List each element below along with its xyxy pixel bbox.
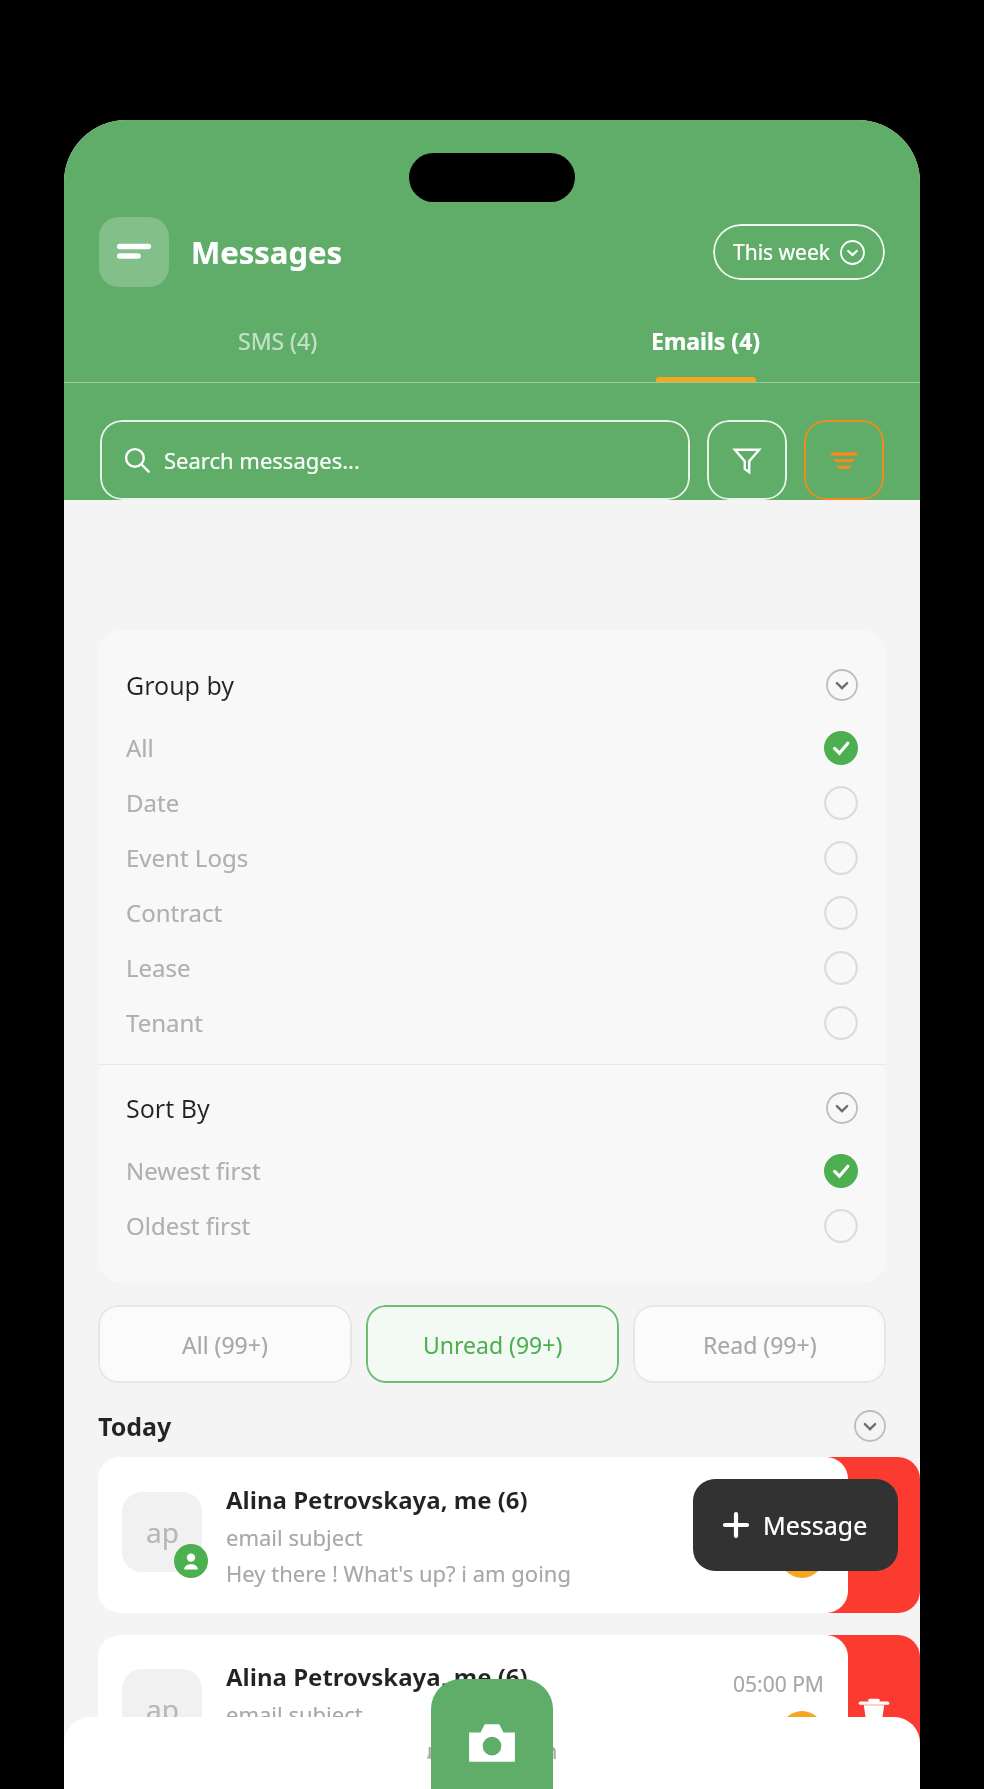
staticText: Contract (126, 896, 223, 929)
button[interactable]: All (99+) (98, 1305, 352, 1383)
button[interactable]: Collapse Today (854, 1410, 886, 1442)
button[interactable]: Delete (828, 1635, 920, 1789)
button[interactable]: Delete (828, 1457, 920, 1613)
staticText: Hey there ! What's up? i am going (226, 1558, 571, 1588)
button[interactable]: SMS (4) (64, 325, 492, 356)
button[interactable]: Oldest first (98, 1198, 886, 1253)
staticText: Date (126, 786, 180, 819)
staticText: Alina Petrovskaya, me (6) (226, 1483, 528, 1516)
staticText: Hey there ! What's up? i am going (226, 1735, 571, 1765)
staticText: Message (763, 1508, 868, 1542)
staticText: Alina Petrovskaya, me (6) (226, 1660, 528, 1693)
staticText: ap (146, 1690, 179, 1728)
staticText: ap (146, 1513, 179, 1551)
staticText: Sort By (126, 1091, 210, 1125)
button[interactable]: Sort By (98, 1079, 886, 1137)
staticText: Today (98, 1409, 172, 1443)
button[interactable]: Message (693, 1479, 898, 1571)
staticText: SMS (4) (238, 325, 318, 356)
button[interactable]: Contract (98, 885, 886, 940)
staticText: All (126, 731, 154, 764)
staticText: Oldest first (126, 1209, 251, 1242)
button[interactable]: Emails (4) (492, 325, 920, 356)
button[interactable]: Unread (99+) (366, 1305, 619, 1383)
button[interactable]: Menu (99, 217, 169, 287)
button[interactable]: Sort (804, 420, 884, 500)
button[interactable]: Search messages... (100, 420, 690, 500)
staticText: Unread (99+) (423, 1329, 563, 1360)
button[interactable]: Filter (707, 420, 787, 500)
staticText: Group by (126, 668, 235, 702)
button[interactable]: Read (99+) (633, 1305, 886, 1383)
staticText: Event Logs (126, 841, 249, 874)
button[interactable]: Tenant (98, 995, 886, 1050)
button[interactable]: All (98, 720, 886, 775)
staticText: email subject (226, 1522, 363, 1552)
staticText: email subject (226, 1699, 363, 1729)
staticText: Tenant (126, 1006, 203, 1039)
button[interactable]: Event Logs (98, 830, 886, 885)
staticText: 05:00 PM (733, 1493, 824, 1522)
button[interactable]: Group by (98, 656, 886, 714)
staticText: Messages (191, 231, 343, 273)
staticText: Emails (4) (651, 325, 761, 356)
staticText: Read (99+) (703, 1329, 817, 1360)
button[interactable]: Camera (431, 1679, 553, 1789)
button[interactable]: Lease (98, 940, 886, 995)
staticText: Lease (126, 951, 191, 984)
button[interactable]: ap (98, 1635, 848, 1789)
button[interactable]: This week (713, 224, 885, 280)
button[interactable]: Date (98, 775, 886, 830)
staticText: This week (733, 238, 830, 267)
staticText: 05:00 PM (733, 1670, 824, 1699)
staticText: Search messages... (164, 445, 360, 475)
button[interactable]: Newest first (98, 1143, 886, 1198)
staticText: 3 (795, 1541, 809, 1572)
staticText: Newest first (126, 1154, 261, 1187)
button[interactable]: ap (98, 1457, 848, 1613)
staticText: All (99+) (182, 1329, 268, 1360)
